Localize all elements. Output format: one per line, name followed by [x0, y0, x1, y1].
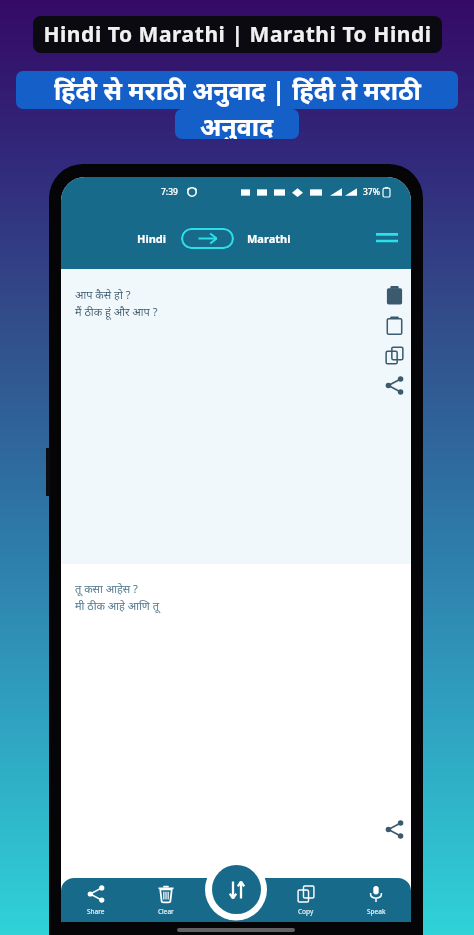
staticText: Share: [87, 907, 105, 916]
button[interactable]: Copy: [271, 878, 341, 922]
button[interactable]: Clear: [131, 878, 201, 922]
staticText: मैं ठीक हूं और आप ?: [75, 304, 158, 319]
staticText: Clear: [158, 907, 174, 916]
button[interactable]: Share: [379, 370, 409, 400]
staticText: तू कसा आहेस ?: [75, 581, 138, 596]
button[interactable]: Paste: [379, 280, 409, 310]
button[interactable]: Share translation: [379, 814, 409, 844]
button[interactable]: Swap languages: [181, 228, 234, 249]
staticText: 37%: [363, 186, 380, 198]
staticText: Hindi: [137, 231, 167, 246]
staticText: 7:39: [161, 186, 178, 198]
staticText: Speak: [367, 907, 386, 916]
button[interactable]: Copy all: [379, 340, 409, 370]
button[interactable]: Speak: [341, 878, 411, 922]
staticText: Marathi: [247, 231, 291, 246]
staticText: आप कैसे हो ?: [75, 287, 131, 302]
staticText: हिंदी से मराठी अनुवाद | हिंदी ते मराठी: [54, 73, 421, 107]
button[interactable]: Translate: [212, 865, 261, 914]
button[interactable]: Copy: [379, 310, 409, 340]
staticText: मी ठीक आहे आणि तू: [75, 598, 159, 613]
button[interactable]: Menu: [372, 223, 402, 253]
staticText: अनुवाद: [200, 109, 274, 139]
staticText: Copy: [298, 907, 314, 916]
staticText: Hindi To Marathi | Marathi To Hindi: [43, 20, 432, 49]
button[interactable]: Share: [61, 878, 131, 922]
